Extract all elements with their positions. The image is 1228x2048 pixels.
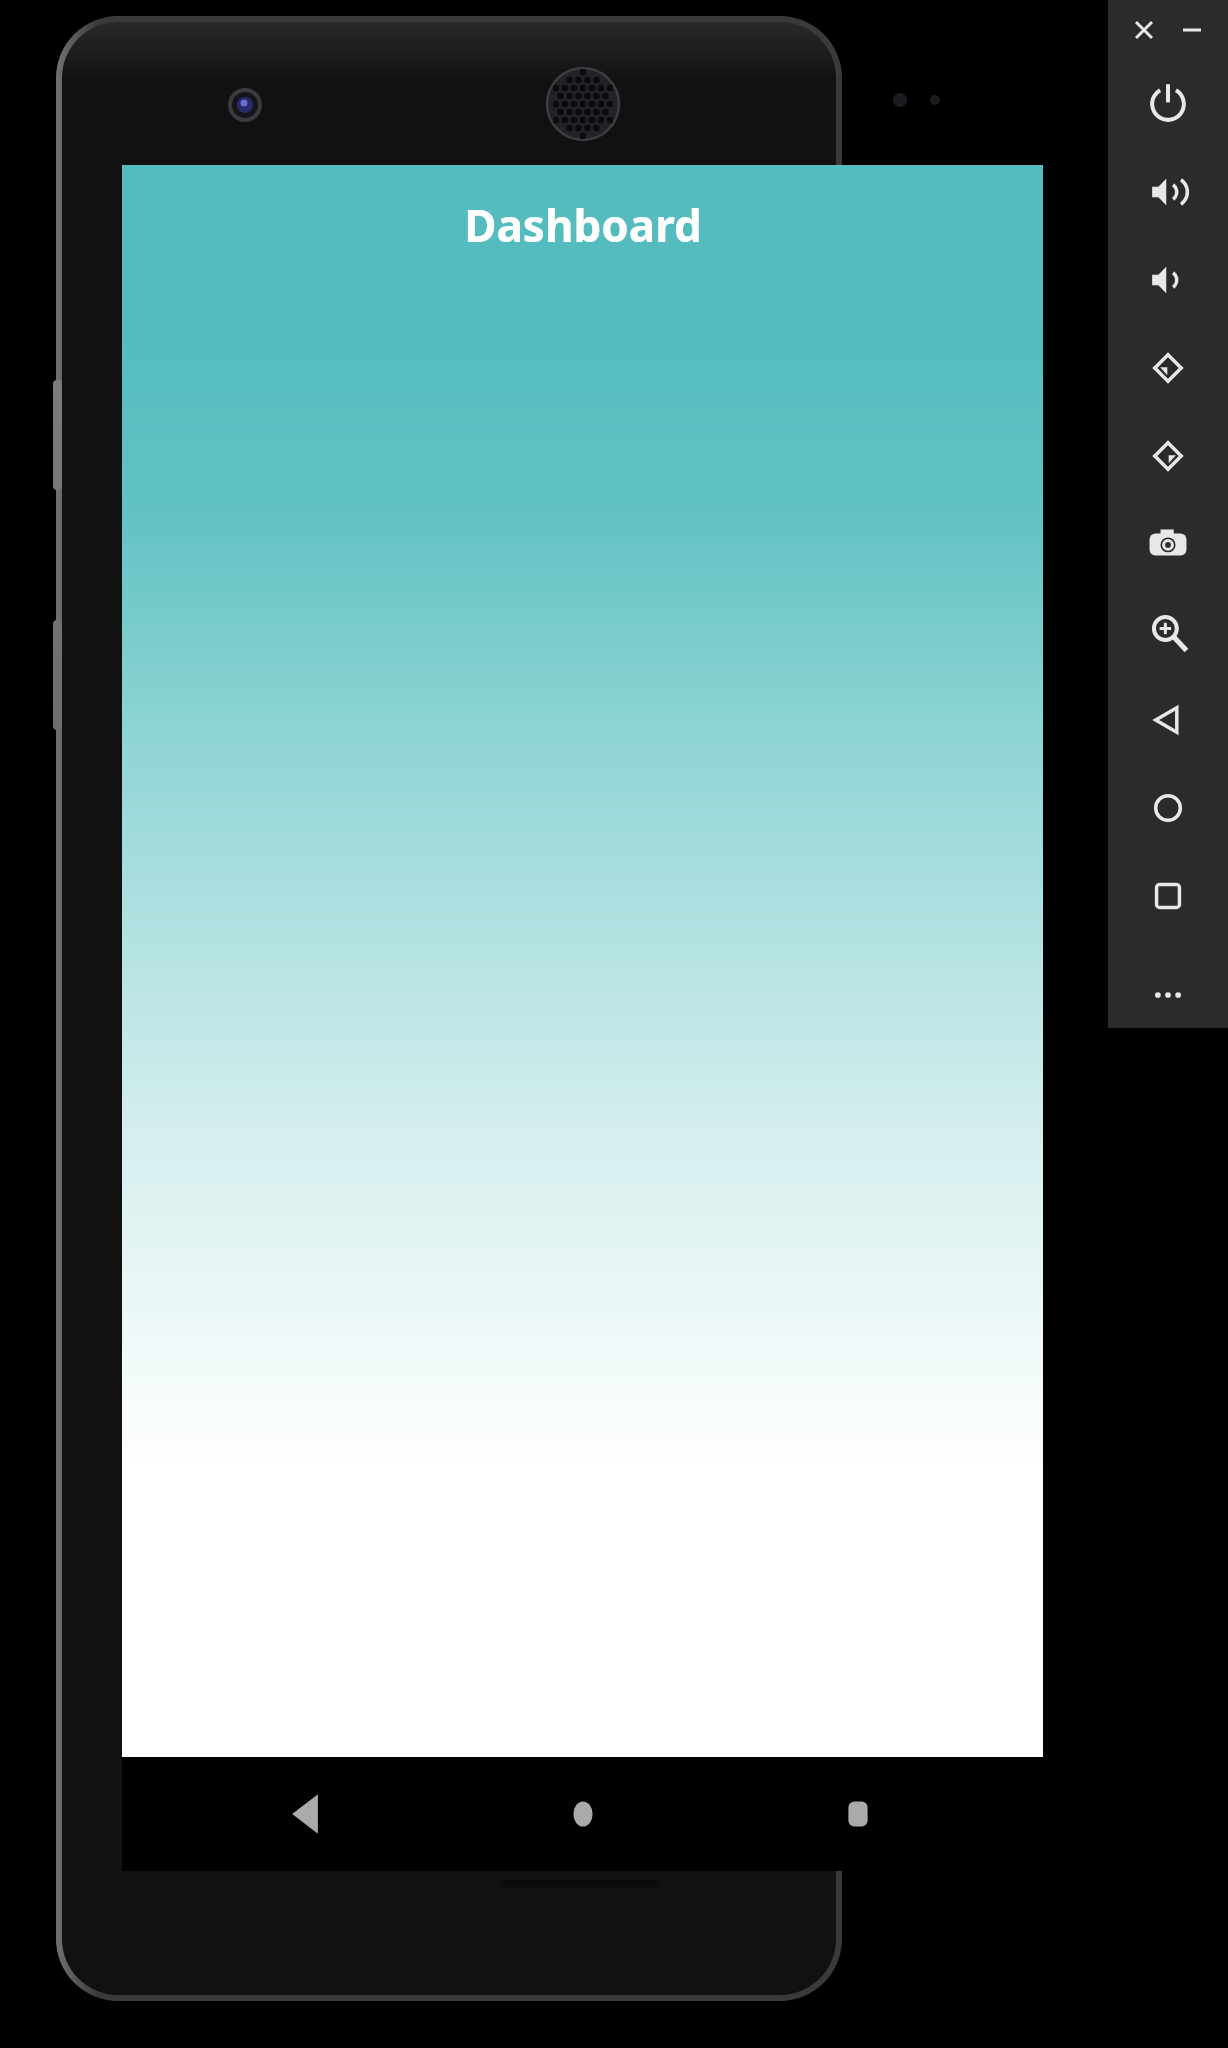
button[interactable]: Rotate right	[1108, 412, 1228, 500]
button[interactable]: Take screenshot	[1108, 500, 1228, 588]
button[interactable]: Back	[1108, 676, 1228, 764]
button[interactable]: Minimize	[1170, 8, 1214, 52]
button[interactable]: Zoom	[1108, 588, 1228, 676]
button[interactable]: Rotate left	[1108, 324, 1228, 412]
button[interactable]: More	[1108, 962, 1228, 1028]
button[interactable]: Recent apps	[768, 1757, 948, 1871]
button[interactable]: Overview	[1108, 852, 1228, 940]
button[interactable]: Power	[1108, 60, 1228, 148]
button[interactable]: Volume down	[1108, 236, 1228, 324]
button[interactable]: Home	[1108, 764, 1228, 852]
staticText: Dashboard	[464, 195, 702, 255]
button[interactable]: Home	[493, 1757, 673, 1871]
button[interactable]: Back	[217, 1757, 397, 1871]
button[interactable]: Close	[1122, 8, 1166, 52]
button[interactable]: Volume up	[1108, 148, 1228, 236]
